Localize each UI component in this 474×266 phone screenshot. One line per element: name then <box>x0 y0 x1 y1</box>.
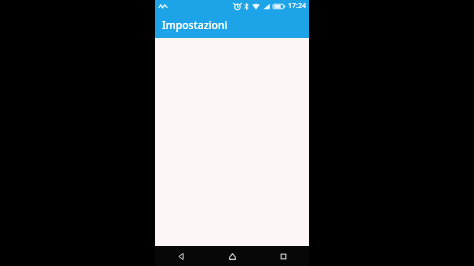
button[interactable]: Home <box>207 246 258 266</box>
button[interactable]: Impostazioni <box>155 12 309 38</box>
staticText: Impostazioni <box>162 18 228 32</box>
staticText: 17:24 <box>288 1 306 11</box>
button[interactable]: Recent apps <box>258 246 309 266</box>
button[interactable]: Back <box>155 246 207 266</box>
